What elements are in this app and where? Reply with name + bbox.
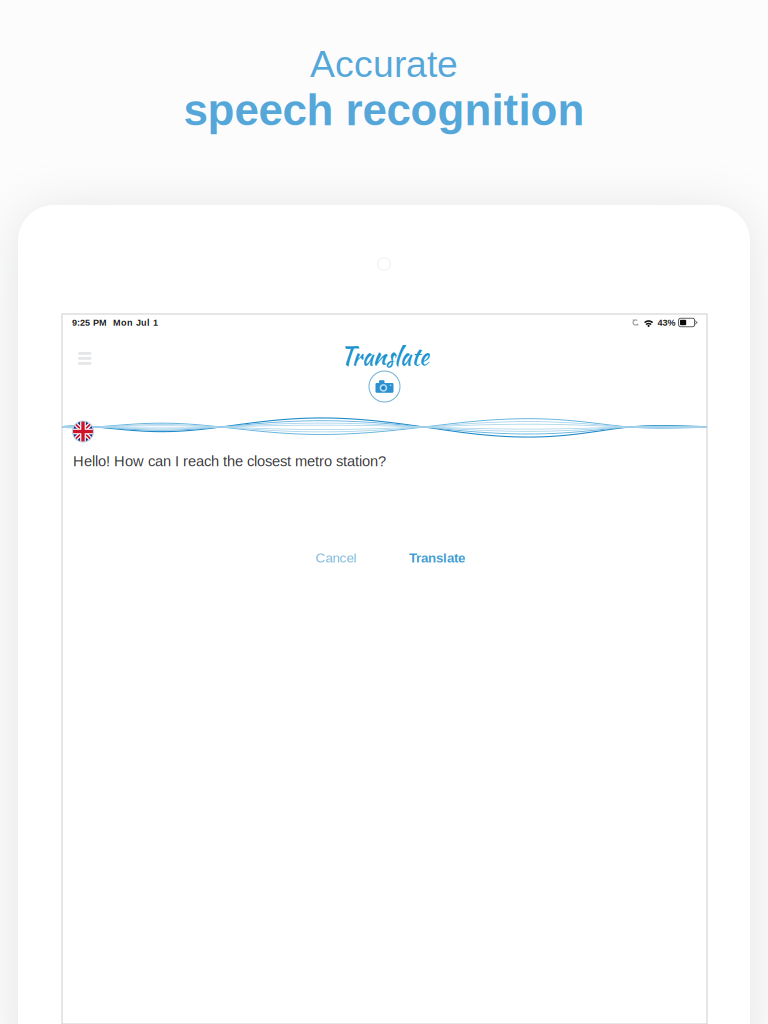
button[interactable]: Camera translate <box>369 371 400 402</box>
staticText: Cancel <box>315 551 356 565</box>
staticText: 43% <box>658 317 676 327</box>
button[interactable]: Cancel <box>304 546 368 570</box>
button[interactable]: Translate <box>402 546 472 570</box>
staticText: Accurate <box>310 43 458 85</box>
staticText: Mon Jul 1 <box>113 317 158 327</box>
button[interactable]: Menu <box>70 344 99 373</box>
staticText: Hello! How can I reach the closest metro… <box>73 453 386 469</box>
staticText: Translate <box>409 551 465 565</box>
staticText: speech recognition <box>183 85 584 135</box>
staticText: 9:25 PM <box>72 317 107 327</box>
staticText: Translate <box>340 339 429 374</box>
